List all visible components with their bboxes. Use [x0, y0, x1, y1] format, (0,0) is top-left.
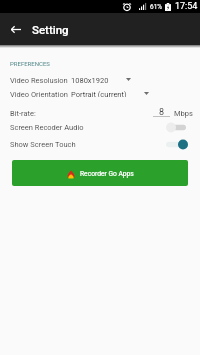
- staticText: Video Orientation: [10, 90, 68, 97]
- staticText: Bit-rate:: [10, 109, 36, 118]
- staticText: 8: [159, 107, 165, 117]
- staticText: Mbps: [174, 109, 193, 118]
- staticText: 61%: [150, 3, 163, 11]
- button[interactable]: Back: [0, 13, 32, 45]
- staticText: 17:54: [175, 1, 198, 12]
- staticText: Video Resolusion: [10, 76, 68, 83]
- staticText: Setting: [32, 23, 69, 36]
- staticText: PREFERENCES: [10, 60, 50, 67]
- button[interactable]: Video Orientation: [0, 90, 200, 97]
- button[interactable]: Show Screen Touch: [0, 139, 200, 150]
- button[interactable]: Screen Recoder Audio: [0, 122, 200, 133]
- staticText: Show Screen Touch: [10, 140, 76, 149]
- button[interactable]: Recorder Go Apps: [12, 160, 188, 186]
- staticText: Screen Recoder Audio: [10, 123, 84, 132]
- staticText: Recorder Go Apps: [80, 170, 134, 178]
- button[interactable]: Video Resolusion: [0, 76, 200, 83]
- staticText: 1080x1920: [71, 76, 109, 83]
- staticText: Portrait (current): [71, 90, 127, 97]
